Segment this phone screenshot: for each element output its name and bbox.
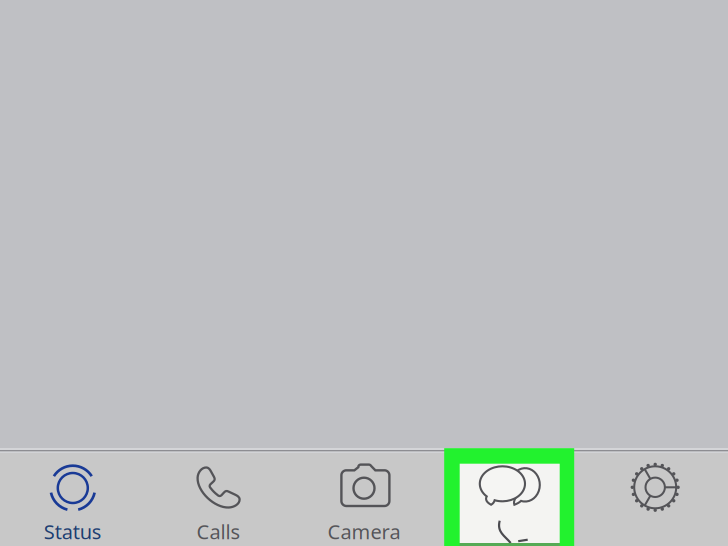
button[interactable]: Camera	[291, 451, 437, 546]
button[interactable]: Calls	[146, 451, 291, 546]
button[interactable]	[437, 451, 582, 546]
staticText: Calls	[196, 518, 240, 545]
button[interactable]: Status	[0, 451, 146, 546]
staticText: Camera	[327, 518, 400, 545]
button[interactable]	[582, 451, 728, 546]
button[interactable]	[460, 464, 560, 543]
staticText: Status	[44, 518, 102, 545]
